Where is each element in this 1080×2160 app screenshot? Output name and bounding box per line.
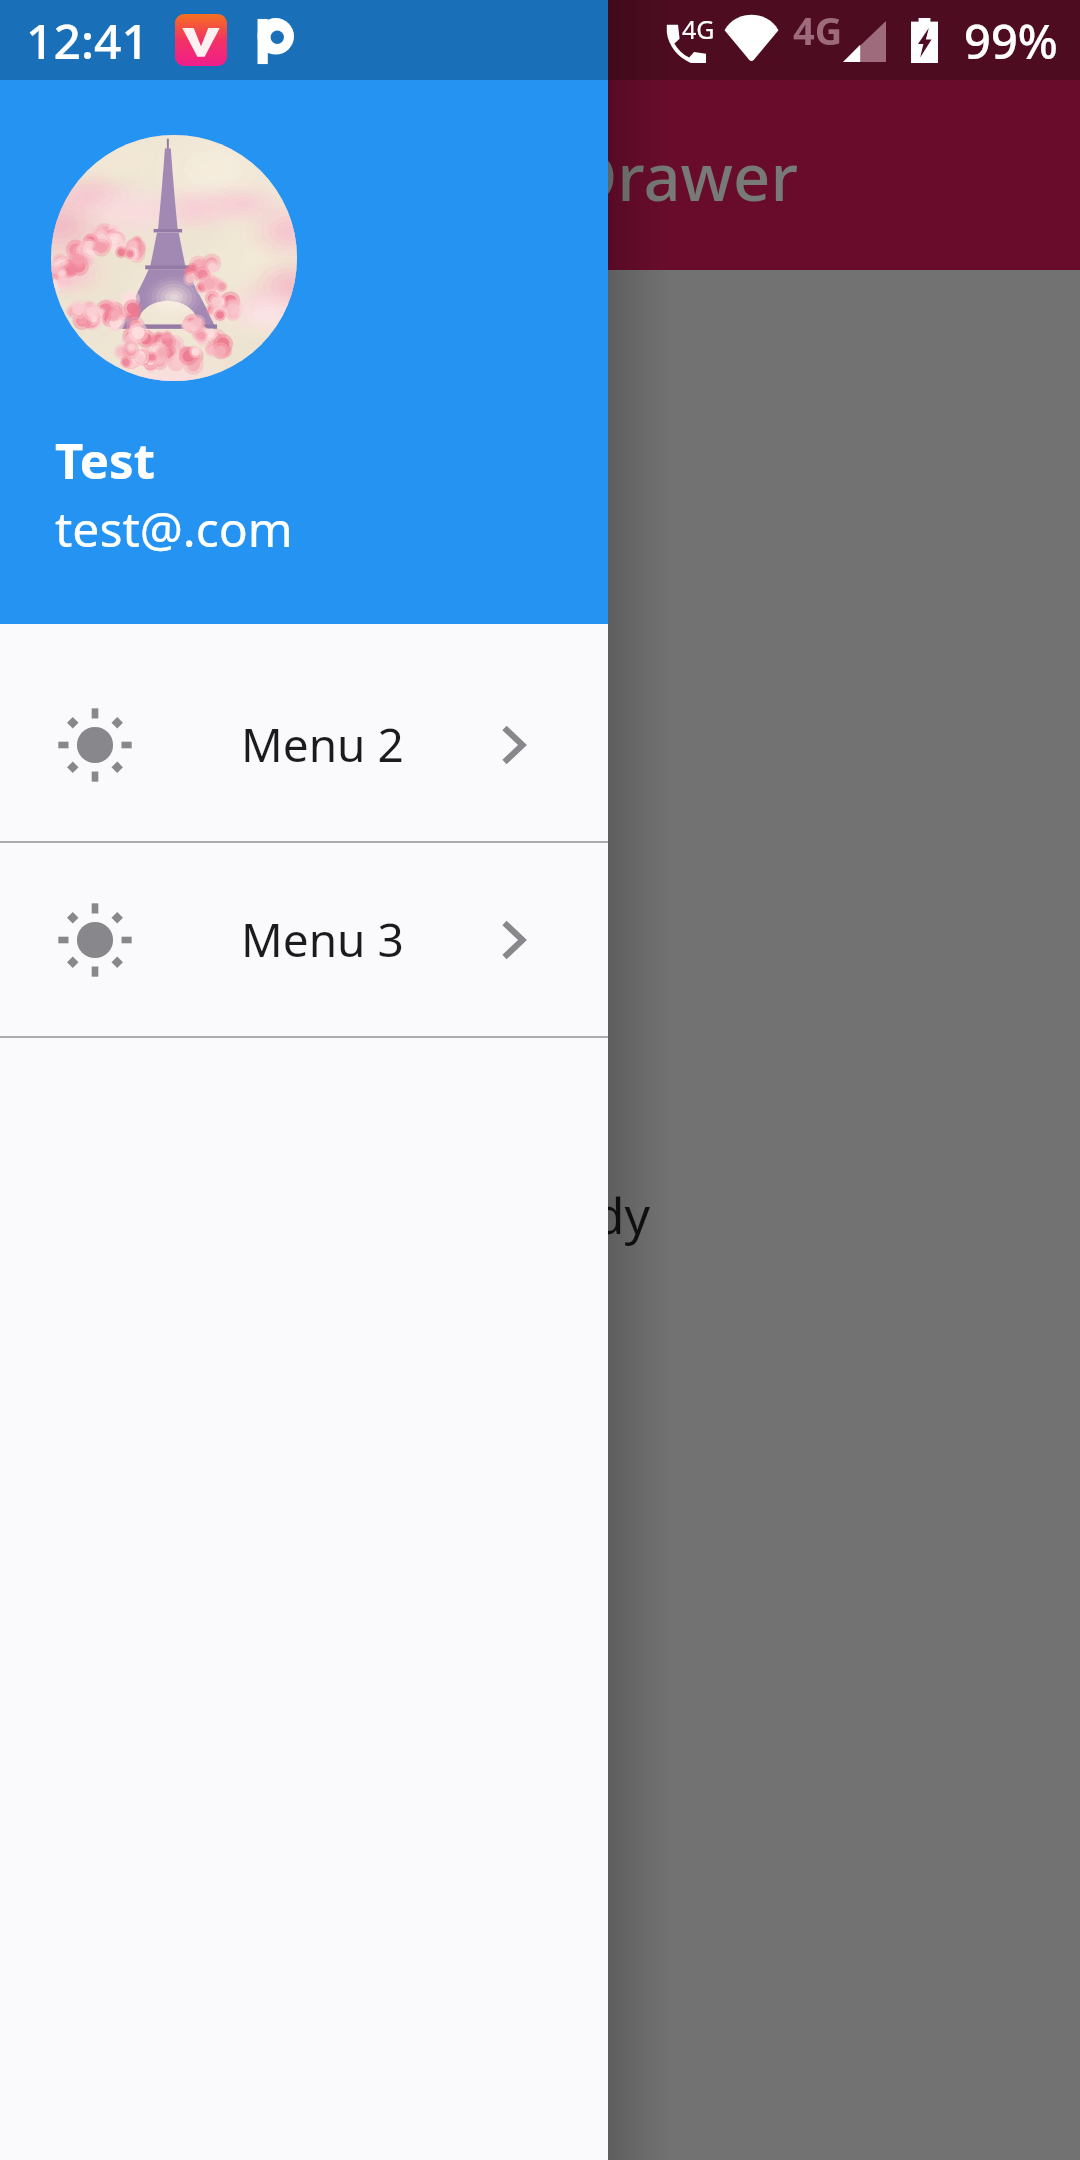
staticText: 12:41 [26, 8, 149, 73]
staticText: test@.com [55, 496, 293, 561]
staticText: Menu 2 [241, 713, 404, 776]
button[interactable]: Brightness [0, 648, 608, 841]
staticText: Test [55, 427, 155, 494]
staticText: Navigation Drawer [213, 132, 798, 221]
staticText: 4G [682, 12, 715, 46]
button[interactable]: Brightness [0, 843, 608, 1036]
staticText: 99% [964, 9, 1058, 73]
button[interactable]: Profile picture [0, 80, 608, 624]
other: Brightness [56, 901, 134, 979]
button[interactable]: Profile picture [51, 135, 297, 381]
other: Brightness [56, 706, 134, 784]
other: Open [501, 724, 526, 766]
other: Open [501, 919, 526, 961]
button[interactable]: Close navigation drawer [0, 270, 1080, 2160]
staticText: Body [531, 1181, 650, 1249]
staticText: Menu 3 [241, 908, 404, 971]
staticText: 4G [793, 4, 843, 56]
